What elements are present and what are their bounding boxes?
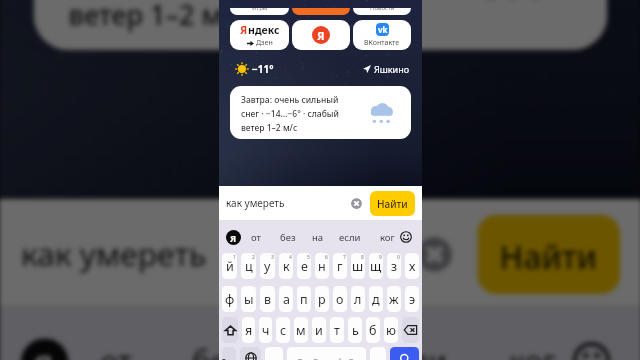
button[interactable]: Завтра: очень сильный — [34, 0, 607, 50]
staticText: как умереть — [21, 231, 208, 275]
button[interactable]: ш — [351, 253, 365, 279]
staticText: ког — [509, 342, 557, 360]
staticText: ВКонтакте — [364, 38, 400, 48]
button[interactable]: Найти — [477, 215, 620, 294]
staticText: если — [379, 342, 449, 360]
staticText: г — [337, 258, 343, 275]
staticText: без — [192, 342, 243, 360]
button[interactable]: о — [333, 286, 347, 312]
staticText: 3 — [271, 254, 274, 261]
staticText: ког — [380, 231, 395, 244]
staticText: ндекс — [248, 23, 280, 37]
button[interactable]: от — [251, 231, 261, 244]
button[interactable]: Найти — [370, 191, 415, 216]
button[interactable]: й — [222, 253, 237, 279]
button[interactable]: . — [370, 347, 386, 360]
button[interactable]: vk — [353, 20, 411, 50]
button[interactable]: э — [405, 286, 419, 312]
staticText: я — [245, 322, 253, 339]
button[interactable]: п — [297, 286, 311, 312]
staticText: а — [283, 291, 290, 308]
staticText: ю — [386, 322, 396, 339]
button[interactable]: ч — [259, 317, 272, 343]
button[interactable]: с — [276, 317, 290, 343]
staticText: −11° — [252, 62, 274, 76]
button[interactable]: е — [297, 253, 311, 279]
button[interactable]: если — [379, 342, 449, 360]
button[interactable]: з — [387, 253, 401, 279]
staticText: от — [100, 342, 132, 360]
staticText: ф — [225, 291, 235, 308]
staticText: ветер 1–2 м/с — [68, 0, 249, 34]
button[interactable]: г — [333, 253, 347, 279]
staticText: ц — [245, 258, 253, 275]
button[interactable]: н — [315, 253, 329, 279]
staticText: ветер 1–2 м/с — [241, 122, 298, 134]
button[interactable]: Search — [390, 347, 419, 360]
button[interactable]: Backspace — [402, 317, 419, 343]
staticText: о — [336, 291, 344, 308]
button[interactable]: Я — [292, 20, 350, 50]
button[interactable]: Change language — [240, 347, 261, 360]
button[interactable]: б — [366, 317, 380, 343]
staticText: и — [315, 322, 323, 339]
staticText: х — [409, 258, 416, 275]
staticText: в — [264, 291, 272, 308]
button[interactable]: к — [279, 253, 293, 279]
button[interactable]: на — [294, 342, 332, 360]
button[interactable]: м — [294, 317, 308, 343]
button[interactable]: ц — [241, 253, 256, 279]
button[interactable]: Завтра: очень сильный — [230, 86, 411, 139]
staticText: ч — [262, 322, 270, 339]
staticText: 1 — [233, 254, 236, 261]
staticText: ?123 — [222, 356, 236, 360]
staticText: з — [391, 258, 398, 275]
button[interactable]: если — [339, 231, 361, 244]
button[interactable]: Я — [230, 20, 289, 50]
button[interactable]: Shift — [222, 317, 238, 343]
staticText: б — [369, 322, 377, 339]
button[interactable]: на — [312, 231, 324, 244]
button[interactable]: в — [260, 286, 275, 312]
button[interactable]: у — [260, 253, 275, 279]
button[interactable]: , — [265, 347, 283, 360]
button[interactable]: Emoji — [572, 342, 610, 360]
button[interactable]: ю — [384, 317, 398, 343]
button[interactable]: р — [315, 286, 329, 312]
button[interactable]: Emoji — [400, 231, 412, 243]
staticText: д — [372, 291, 380, 308]
button[interactable]: Clear — [351, 198, 362, 209]
button[interactable]: Space — [287, 347, 366, 360]
staticText: п — [300, 291, 308, 308]
button[interactable]: и — [312, 317, 326, 343]
button[interactable]: щ — [369, 253, 383, 279]
button[interactable]: Clear — [417, 237, 452, 272]
staticText: с — [280, 322, 287, 339]
button[interactable]: а — [279, 286, 293, 312]
staticText: ш — [352, 258, 364, 275]
button[interactable]: без — [280, 231, 296, 244]
staticText: если — [339, 231, 361, 244]
button[interactable]: л — [351, 286, 365, 312]
staticText: Новости — [370, 8, 395, 11]
button[interactable]: ж — [387, 286, 401, 312]
button[interactable]: Yandex assistant — [21, 338, 68, 360]
button[interactable]: от — [100, 342, 132, 360]
button[interactable]: ь — [348, 317, 362, 343]
button[interactable]: ког — [380, 231, 395, 244]
button[interactable]: без — [192, 342, 243, 360]
button[interactable]: ког — [509, 342, 557, 360]
button[interactable]: т — [330, 317, 344, 343]
button[interactable]: ?123 — [222, 347, 236, 360]
staticText: е — [301, 258, 308, 275]
button[interactable]: ф — [222, 286, 237, 312]
staticText: Я — [230, 232, 237, 244]
button[interactable]: х — [405, 253, 419, 279]
button[interactable]: ы — [241, 286, 256, 312]
button[interactable]: я — [242, 317, 255, 343]
button[interactable]: д — [369, 286, 383, 312]
button[interactable]: Yandex assistant — [226, 230, 241, 245]
staticText: 9 — [379, 254, 382, 261]
staticText: р — [318, 291, 326, 308]
